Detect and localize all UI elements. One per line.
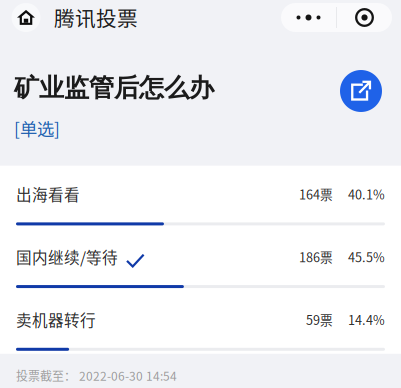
staticText: 59票 [306, 310, 333, 329]
staticText: 国内继续/等待 [16, 245, 118, 268]
staticText: 14.4% [348, 310, 385, 329]
staticText: 出海看看 [16, 183, 80, 205]
staticText: 卖机器转行 [16, 308, 96, 331]
button[interactable]: Close mini program [337, 3, 392, 32]
staticText: 164票 [299, 185, 333, 203]
staticText: 矿业监管后怎么办 [14, 72, 214, 104]
button[interactable]: Home [9, 0, 43, 34]
staticText: 腾讯投票 [54, 2, 138, 32]
button[interactable]: 出海看看 [0, 166, 401, 228]
button[interactable]: More options [281, 3, 336, 32]
staticText: 投票截至： 2022-06-30 14:54 [16, 367, 177, 384]
button[interactable]: 卖机器转行 [0, 291, 401, 354]
button[interactable]: 国内继续/等待 [0, 228, 401, 291]
button[interactable]: Share poll [339, 69, 383, 113]
staticText: [单选] [14, 116, 60, 141]
staticText: 40.1% [348, 185, 385, 203]
staticText: 186票 [299, 248, 333, 266]
staticText: 45.5% [348, 248, 385, 266]
